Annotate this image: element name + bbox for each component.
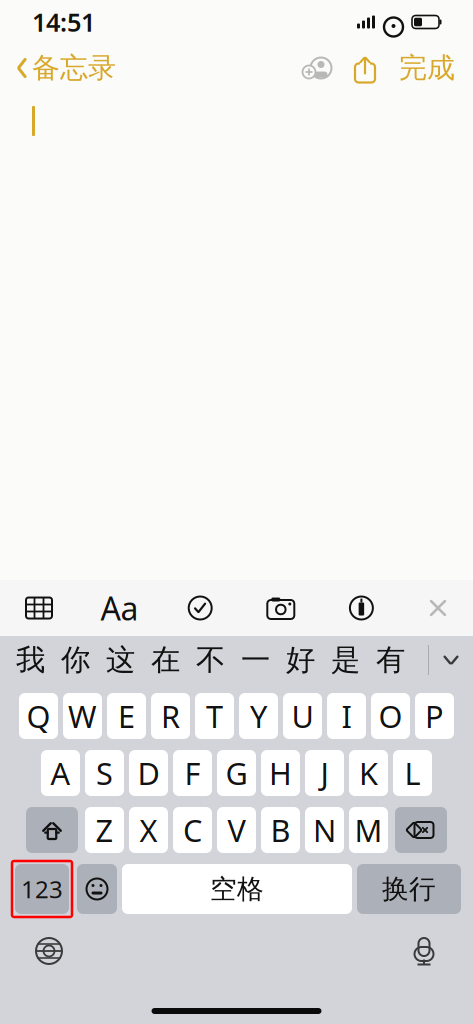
button[interactable]: V [217,807,256,853]
staticText: W [68,696,97,736]
button[interactable]: Format [91,586,149,630]
staticText: T [206,696,223,736]
staticText: P [425,696,444,736]
staticText: 一 [241,642,270,678]
button[interactable]: Markup [332,586,390,630]
button[interactable]: Y [239,693,278,739]
staticText: S [96,753,113,793]
button[interactable]: Add People [291,47,341,89]
button[interactable]: Close [413,586,463,630]
button[interactable]: Dictation [397,929,451,973]
button[interactable]: Q [19,693,58,739]
button[interactable]: 你 [53,637,98,683]
button[interactable]: Next Keyboard [22,929,76,973]
button[interactable]: 换行 [357,864,461,914]
button[interactable]: P [415,693,454,739]
staticText: 14:51 [32,5,95,39]
button[interactable]: F [173,750,212,796]
staticText: 我 [16,642,45,678]
staticText: F [184,753,200,793]
button[interactable]: M [349,807,388,853]
staticText: D [137,753,159,793]
button[interactable]: 有 [368,637,413,683]
staticText: L [404,753,420,793]
button[interactable]: Emoji [77,864,117,914]
button[interactable]: 我 [8,637,53,683]
staticText: Z [95,810,113,850]
staticText: Q [26,696,50,736]
button[interactable]: R [151,693,190,739]
staticText: 空格 [210,873,264,905]
button[interactable]: Share [341,49,389,87]
staticText: Aa [101,587,139,629]
staticText: N [313,810,336,850]
button[interactable]: D [129,750,168,796]
staticText: O [378,696,402,736]
staticText: M [354,810,382,850]
button[interactable]: 备忘录 [0,45,116,91]
staticText: Y [250,696,267,736]
button[interactable]: O [371,693,410,739]
button[interactable]: J [305,750,344,796]
button[interactable]: 空格 [122,864,352,914]
staticText: 这 [106,642,135,678]
button[interactable]: T [195,693,234,739]
staticText: R [161,696,180,736]
staticText: V [227,810,245,850]
staticText: 备忘录 [32,51,116,85]
button[interactable]: B [261,807,300,853]
button[interactable]: More Candidates [429,637,473,683]
button[interactable]: 是 [323,637,368,683]
button[interactable]: Shift [26,807,78,853]
staticText: 好 [286,642,315,678]
staticText: A [50,753,70,793]
staticText: E [118,696,135,736]
staticText: X [139,810,157,850]
button[interactable]: 完成 [389,45,473,91]
button[interactable]: K [349,750,388,796]
button[interactable]: S [85,750,124,796]
button[interactable]: 这 [98,637,143,683]
staticText: U [291,696,313,736]
button[interactable]: I [327,693,366,739]
staticText: J [320,753,328,793]
button[interactable]: U [283,693,322,739]
staticText: C [183,810,202,850]
staticText: 在 [151,642,180,678]
button[interactable]: Checklist [171,586,229,630]
staticText: 不 [196,642,225,678]
staticText: G [225,753,247,793]
button[interactable]: H [261,750,300,796]
button[interactable]: Z [85,807,124,853]
button[interactable]: W [63,693,102,739]
button[interactable]: 在 [143,637,188,683]
staticText: 有 [376,642,405,678]
button[interactable]: Delete [395,807,447,853]
button[interactable]: A [41,750,80,796]
staticText: H [269,753,292,793]
button[interactable]: N [305,807,344,853]
button[interactable]: 不 [188,637,233,683]
staticText: I [341,696,351,736]
staticText: 123 [21,873,63,905]
button[interactable]: E [107,693,146,739]
button[interactable]: L [393,750,432,796]
button[interactable]: 好 [278,637,323,683]
button[interactable]: Camera [252,586,310,630]
staticText: 你 [61,642,90,678]
staticText: 是 [331,642,360,678]
button[interactable]: X [129,807,168,853]
button[interactable]: C [173,807,212,853]
staticText: B [270,810,290,850]
button[interactable]: 123 [12,861,72,917]
staticText: K [359,753,378,793]
button[interactable]: G [217,750,256,796]
staticText: 完成 [399,51,455,85]
button[interactable]: Table [10,586,68,630]
button[interactable]: 一 [233,637,278,683]
staticText: 换行 [382,873,436,905]
